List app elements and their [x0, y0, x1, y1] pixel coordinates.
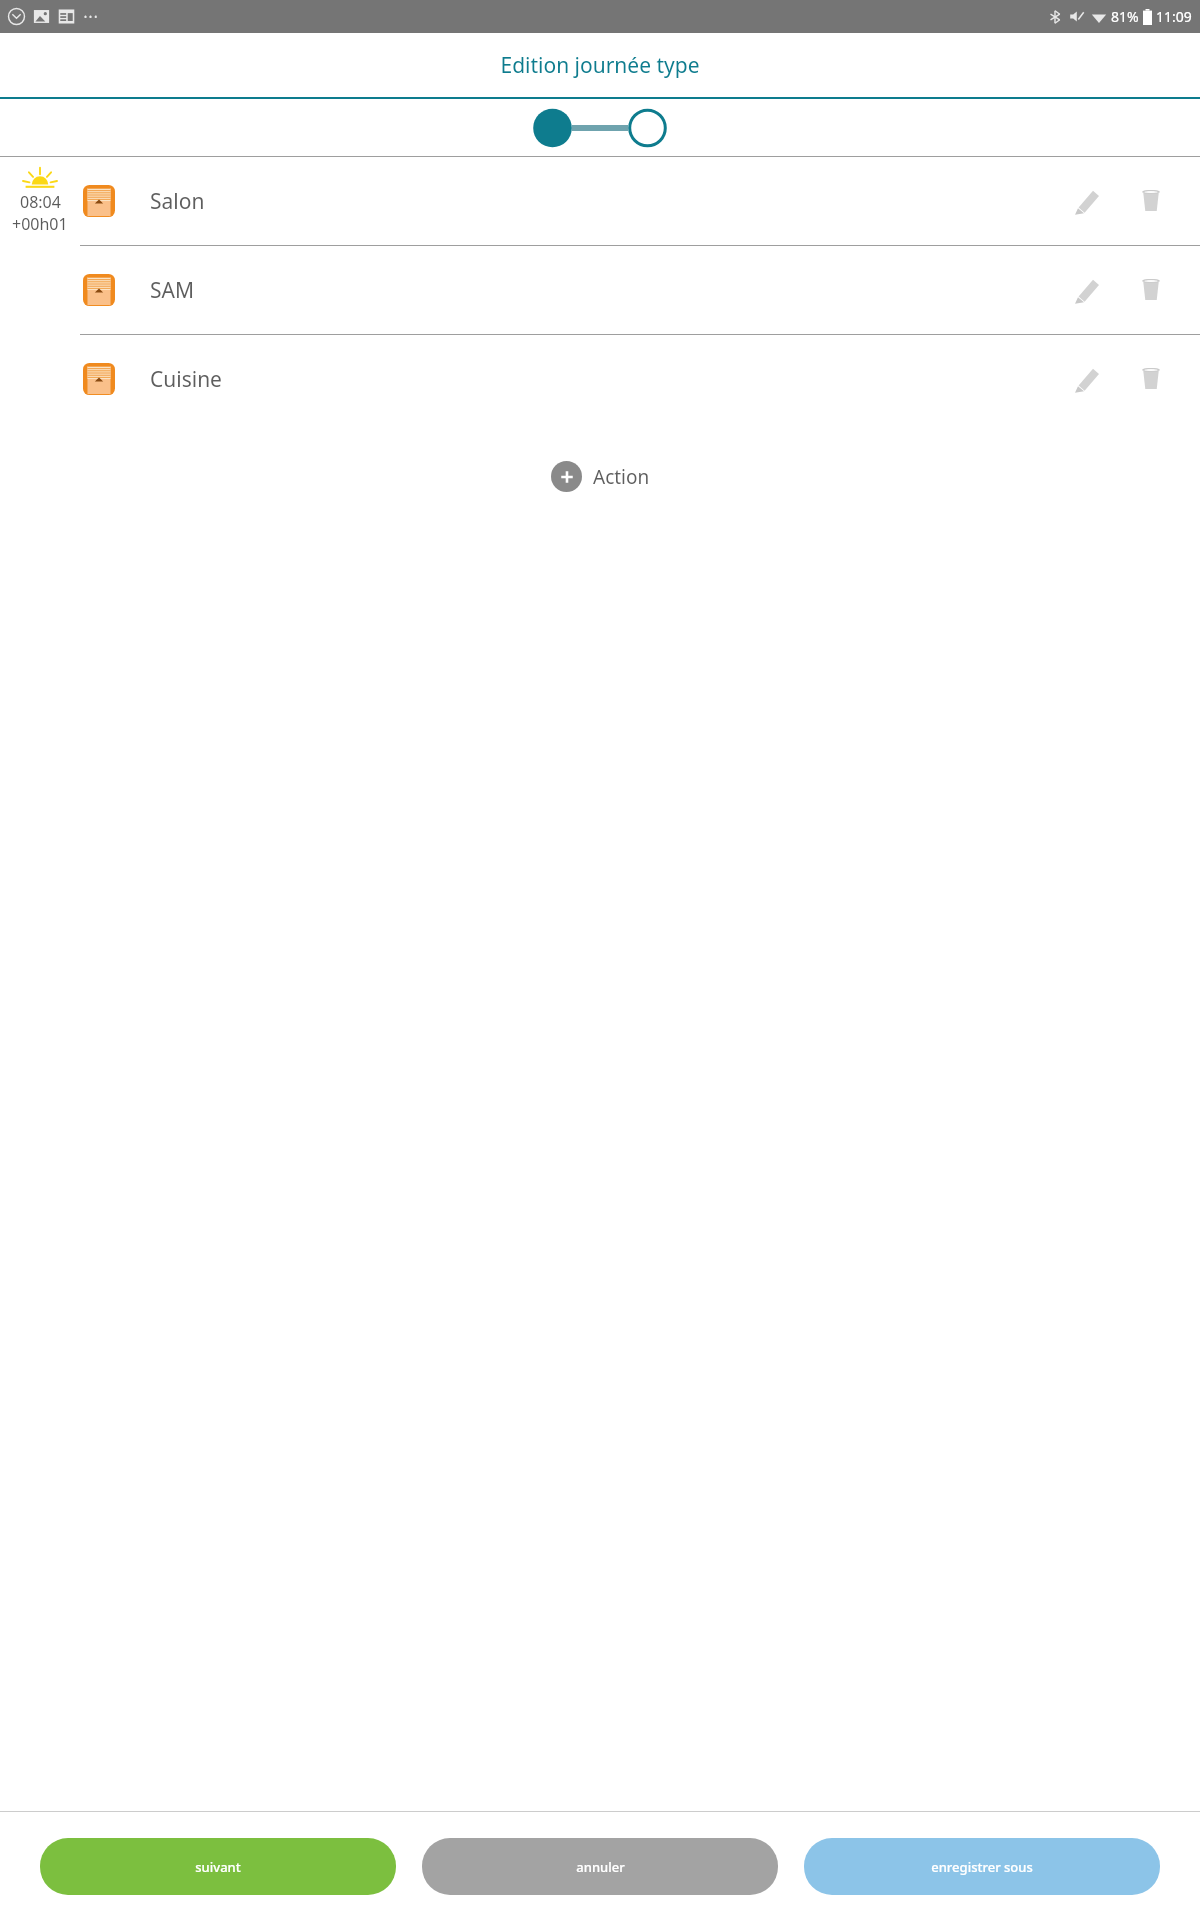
button[interactable]: Modifier	[1060, 174, 1114, 228]
button[interactable]: Action	[541, 455, 660, 498]
button[interactable]: 08:04	[0, 157, 1200, 245]
button[interactable]: Volet roulant	[80, 182, 118, 220]
staticText: SAM	[150, 276, 194, 305]
staticText: Salon	[150, 187, 205, 216]
button[interactable]: Supprimer	[1124, 352, 1178, 406]
button[interactable]: Volet roulant	[80, 360, 118, 398]
button[interactable]: Volet roulant	[80, 271, 118, 309]
staticText: annuler	[576, 1858, 625, 1876]
staticText: • • •	[84, 11, 98, 22]
staticText: 08:04	[20, 191, 61, 213]
staticText: 11:09	[1156, 7, 1192, 26]
button[interactable]: Supprimer	[1124, 263, 1178, 317]
button[interactable]: Modifier	[1060, 263, 1114, 317]
button[interactable]: suivant	[40, 1838, 396, 1895]
staticText: Cuisine	[150, 365, 222, 394]
staticText: suivant	[195, 1858, 241, 1876]
button[interactable]: Volet roulant	[0, 335, 1200, 423]
staticText: Edition journée type	[500, 51, 700, 80]
staticText: Action	[593, 464, 650, 490]
staticText: +00h01	[12, 213, 68, 235]
button[interactable]: Supprimer	[1124, 174, 1178, 228]
button[interactable]: annuler	[422, 1838, 778, 1895]
button[interactable]: enregistrer sous	[804, 1838, 1160, 1895]
button[interactable]: Modifier	[1060, 352, 1114, 406]
staticText: 81%	[1111, 7, 1139, 26]
staticText: enregistrer sous	[931, 1858, 1033, 1876]
button[interactable]: Volet roulant	[0, 246, 1200, 334]
